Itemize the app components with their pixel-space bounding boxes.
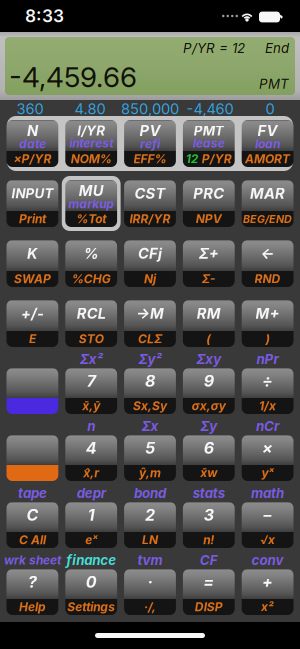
staticText: ŷ,m	[139, 466, 161, 480]
staticText: 360	[16, 100, 43, 118]
button[interactable]: ·	[121, 565, 179, 619]
staticText: refi	[140, 137, 160, 151]
staticText: 4	[86, 438, 97, 458]
button[interactable]: 7	[62, 364, 121, 418]
staticText: Sx,Sy	[133, 399, 167, 413]
button[interactable]: M+	[238, 296, 297, 351]
button[interactable]: ÷	[238, 364, 297, 418]
staticText: 1	[88, 505, 95, 525]
button[interactable]: 8	[121, 364, 179, 418]
staticText: CF	[200, 552, 218, 568]
button[interactable]: FV	[238, 116, 297, 171]
button[interactable]: ←	[238, 236, 297, 291]
staticText: P/YR = 12	[183, 40, 245, 56]
button[interactable]: +/-	[3, 296, 62, 351]
button[interactable]: Σ+	[179, 236, 238, 291]
button[interactable]: I/YR	[62, 116, 121, 171]
staticText: M+	[256, 305, 280, 322]
staticText: PMT	[194, 123, 224, 139]
staticText: loan	[255, 137, 280, 151]
staticText: LN	[142, 533, 158, 547]
staticText: x²	[261, 600, 274, 614]
button[interactable]: N	[3, 116, 62, 171]
staticText: DISP	[195, 600, 223, 614]
staticText: PV	[139, 122, 160, 140]
button[interactable]: RM	[179, 296, 238, 351]
staticText: stats	[193, 485, 225, 501]
staticText: E	[29, 332, 36, 346]
staticText: ·/,	[144, 600, 156, 614]
staticText: ÷	[262, 371, 273, 391]
button[interactable]: PV	[121, 116, 179, 171]
staticText: Settings	[67, 600, 115, 614]
button[interactable]: INPUT	[3, 176, 62, 231]
button[interactable]: PRC	[179, 176, 238, 231]
staticText: Print	[19, 212, 46, 226]
button[interactable]: ?	[3, 565, 62, 619]
button[interactable]: 1	[62, 498, 121, 552]
button[interactable]: MAR	[238, 176, 297, 231]
button[interactable]: ×	[238, 431, 297, 485]
staticText: tape	[18, 485, 47, 501]
staticText: C	[26, 505, 38, 525]
staticText: ×	[262, 438, 273, 458]
staticText: finance	[66, 552, 116, 568]
staticText: x̂,r	[83, 466, 99, 480]
button[interactable]: Enter	[3, 364, 62, 418]
staticText: =	[203, 572, 214, 592]
button[interactable]: 9	[179, 364, 238, 418]
button[interactable]: 0	[62, 565, 121, 619]
button[interactable]: MU	[62, 176, 121, 231]
staticText: x̄w	[200, 466, 217, 480]
staticText: eˣ	[85, 533, 97, 547]
staticText: nPr	[257, 351, 279, 367]
button[interactable]: −	[238, 498, 297, 552]
button[interactable]: CFj	[121, 236, 179, 291]
staticText: Σ+	[199, 245, 219, 262]
staticText: Help	[19, 600, 46, 614]
staticText: 3	[204, 505, 214, 525]
staticText: (	[206, 332, 211, 346]
staticText: C All	[19, 533, 46, 547]
staticText: SWAP	[14, 272, 51, 286]
staticText: PMT	[259, 76, 289, 92]
staticText: x̄,ȳ	[82, 399, 100, 413]
staticText: σx,σy	[192, 399, 226, 413]
button[interactable]: K	[3, 236, 62, 291]
button[interactable]: RCL	[62, 296, 121, 351]
button[interactable]: %	[62, 236, 121, 291]
button[interactable]: 5	[121, 431, 179, 485]
button[interactable]: 4	[62, 431, 121, 485]
staticText: INPUT	[11, 185, 53, 201]
staticText: BEG/END	[243, 212, 292, 225]
staticText: 8:33	[25, 5, 64, 26]
staticText: -4,459.66	[9, 60, 137, 94]
button[interactable]: 2	[121, 498, 179, 552]
staticText: ×P/YR	[13, 152, 51, 166]
button[interactable]: CST	[121, 176, 179, 231]
staticText: 4.80	[74, 100, 105, 118]
staticText: K	[27, 245, 38, 262]
staticText: ·	[147, 572, 152, 592]
button[interactable]: PMT	[179, 116, 238, 171]
button[interactable]: →M	[121, 296, 179, 351]
staticText: depr	[77, 485, 106, 501]
button[interactable]: 6	[179, 431, 238, 485]
staticText: yˣ	[262, 466, 274, 480]
staticText: %	[84, 245, 99, 262]
staticText: Nj	[144, 272, 156, 286]
button[interactable]: Backspace	[3, 431, 62, 485]
button[interactable]: =	[179, 565, 238, 619]
button[interactable]: C	[3, 498, 62, 552]
staticText: Σy²	[138, 351, 161, 367]
staticText: )	[266, 332, 270, 346]
button[interactable]: +	[238, 565, 297, 619]
staticText: -4,460	[186, 100, 233, 118]
button[interactable]: 3	[179, 498, 238, 552]
staticText: tvm	[137, 552, 162, 568]
staticText: 0	[265, 100, 274, 118]
staticText: ?	[28, 572, 37, 592]
staticText: 12	[186, 152, 199, 166]
